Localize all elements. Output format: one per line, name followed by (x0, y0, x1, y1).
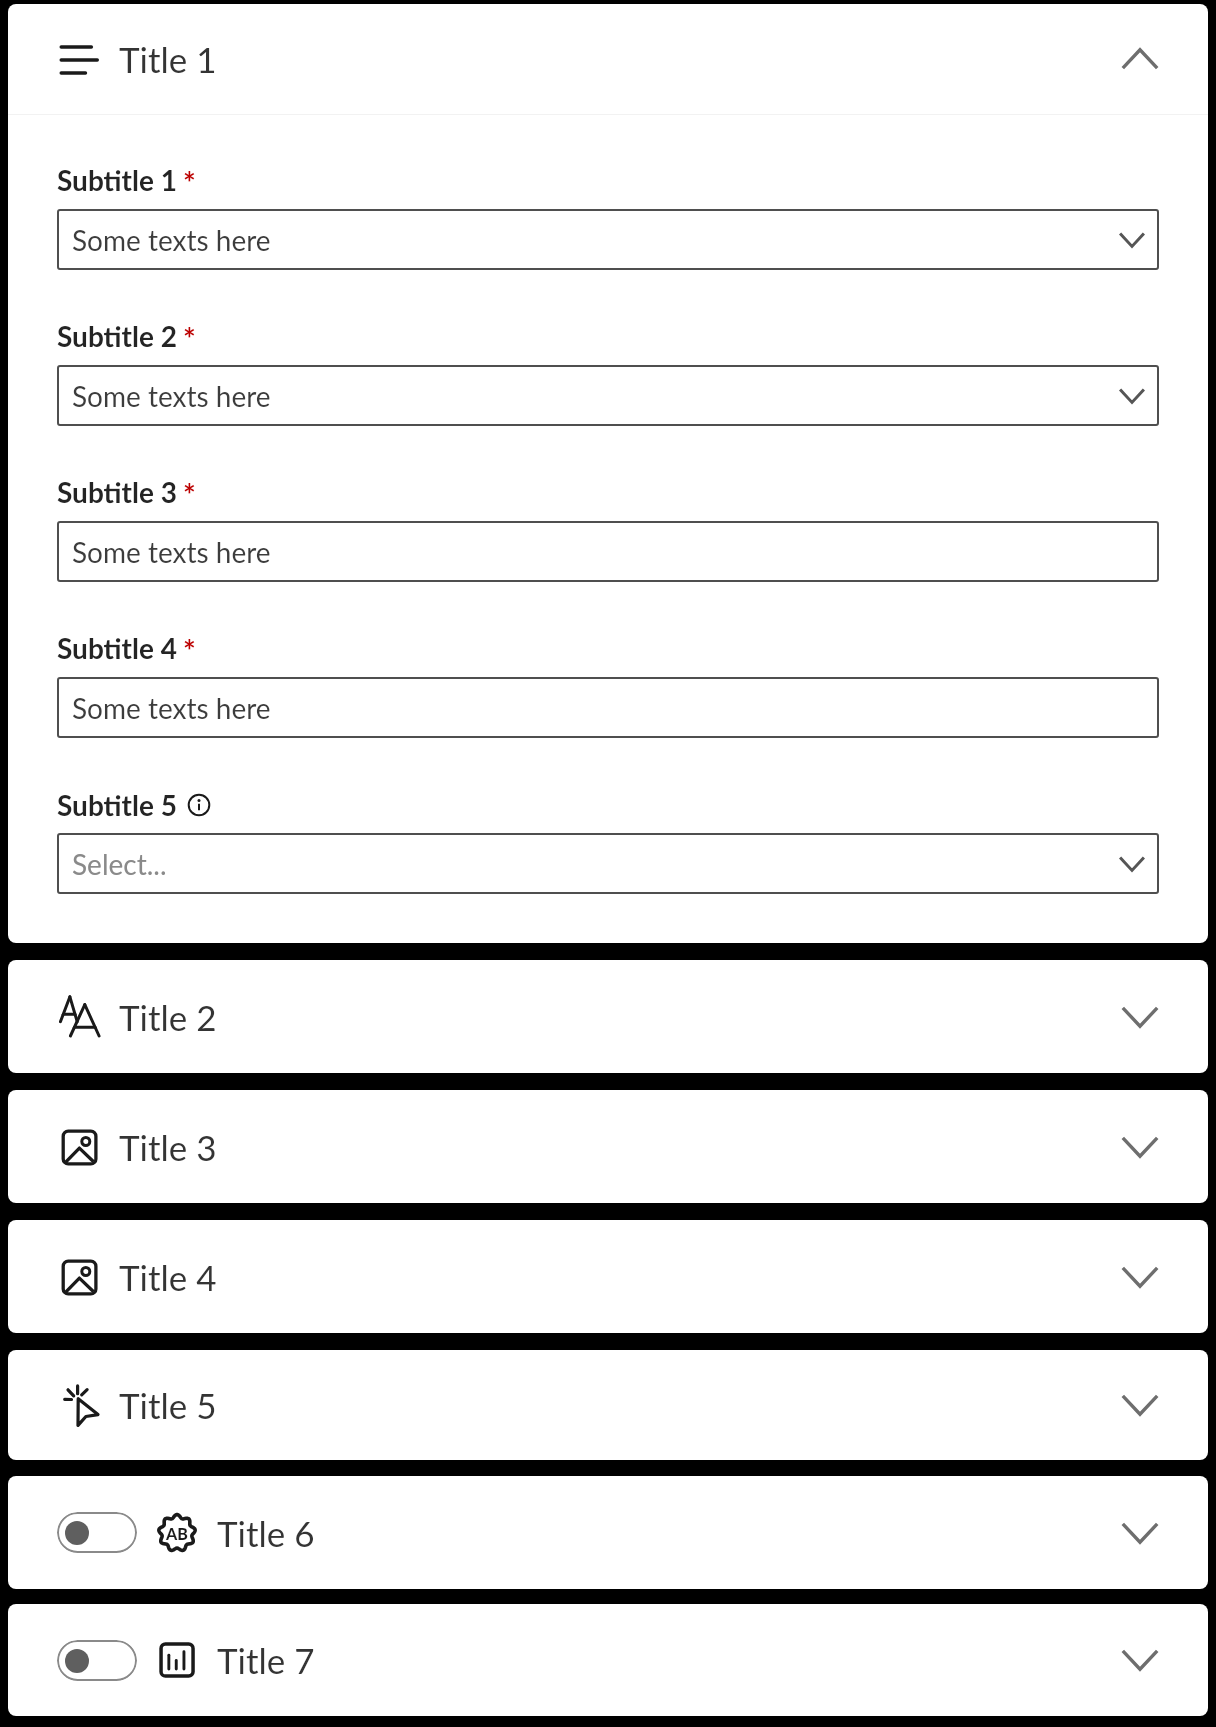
staticText: Some texts here (72, 379, 271, 413)
other: Expand section (1118, 1255, 1162, 1299)
button[interactable]: Toggle (57, 1512, 137, 1553)
staticText: Some texts here (72, 223, 271, 257)
button[interactable]: Some texts here (57, 365, 1159, 426)
staticText: Title 6 (217, 1512, 315, 1554)
other: Open dropdown (1112, 376, 1152, 416)
other: Open dropdown (1112, 844, 1152, 884)
button[interactable]: Title 4 (8, 1220, 1208, 1333)
staticText: AB (166, 1524, 188, 1543)
button[interactable]: Select... (57, 833, 1159, 894)
staticText: Some texts here (72, 535, 271, 569)
button[interactable]: Toggle (57, 1640, 137, 1681)
staticText: Title 2 (119, 996, 217, 1038)
staticText: Subtitle 2 (57, 319, 177, 353)
button[interactable]: Title 2 (8, 960, 1208, 1073)
staticText: * (183, 632, 196, 668)
button[interactable]: Some texts here (57, 677, 1159, 738)
staticText: Title 3 (119, 1126, 217, 1168)
staticText: Title 1 (119, 38, 217, 80)
staticText: * (183, 320, 196, 356)
staticText: Select... (72, 847, 167, 881)
staticText: Title 5 (119, 1384, 217, 1426)
staticText: Subtitle 1 (57, 163, 177, 197)
button[interactable]: Title 5 (8, 1350, 1208, 1460)
staticText: Some texts here (72, 691, 271, 725)
staticText: Title 7 (217, 1639, 315, 1681)
other: Expand section (1118, 1125, 1162, 1169)
other: Expand section (1118, 1511, 1162, 1555)
other: Expand section (1118, 995, 1162, 1039)
other: Open dropdown (1112, 220, 1152, 260)
other: Collapse section (1118, 37, 1162, 81)
button[interactable]: Some texts here (57, 209, 1159, 270)
staticText: Subtitle 5 (57, 788, 177, 822)
other: Expand section (1118, 1383, 1162, 1427)
staticText: Subtitle 4 (57, 631, 177, 665)
button[interactable]: Some texts here (57, 521, 1159, 582)
button[interactable]: Toggle (8, 1604, 1208, 1716)
button[interactable]: Title 3 (8, 1090, 1208, 1203)
staticText: * (183, 476, 196, 512)
other: Expand section (1118, 1638, 1162, 1682)
staticText: * (183, 164, 196, 200)
button[interactable]: Title 1 (8, 4, 1208, 114)
button[interactable]: Toggle (8, 1476, 1208, 1589)
staticText: Title 4 (119, 1256, 217, 1298)
staticText: Subtitle 3 (57, 475, 177, 509)
